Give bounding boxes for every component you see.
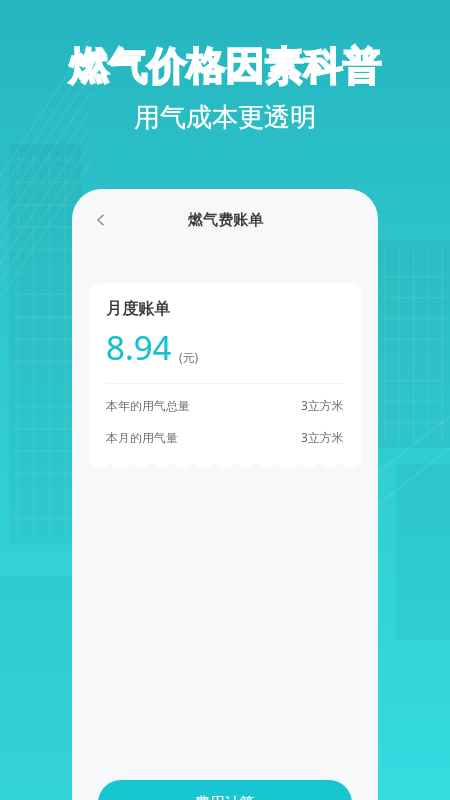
staticText: 用气成本更透明 — [134, 101, 316, 134]
staticText: 月度账单 — [106, 299, 170, 319]
staticText: 燃气价格因素科普 — [69, 42, 381, 91]
staticText: 3立方米 — [301, 429, 344, 445]
button[interactable]: 本年的用气总量 — [106, 397, 344, 413]
staticText: 燃气费账单 — [188, 211, 263, 230]
staticText: (元) — [179, 349, 199, 365]
staticText: 本月的用气量 — [106, 430, 178, 445]
staticText: 费用计算 — [195, 794, 255, 800]
staticText: 3立方米 — [301, 397, 344, 413]
button[interactable]: 返回 — [82, 201, 120, 239]
button[interactable]: 本月的用气量 — [106, 429, 344, 445]
button[interactable]: 费用计算 — [98, 780, 352, 800]
staticText: 本年的用气总量 — [106, 398, 190, 413]
staticText: 8.94 — [106, 325, 172, 370]
